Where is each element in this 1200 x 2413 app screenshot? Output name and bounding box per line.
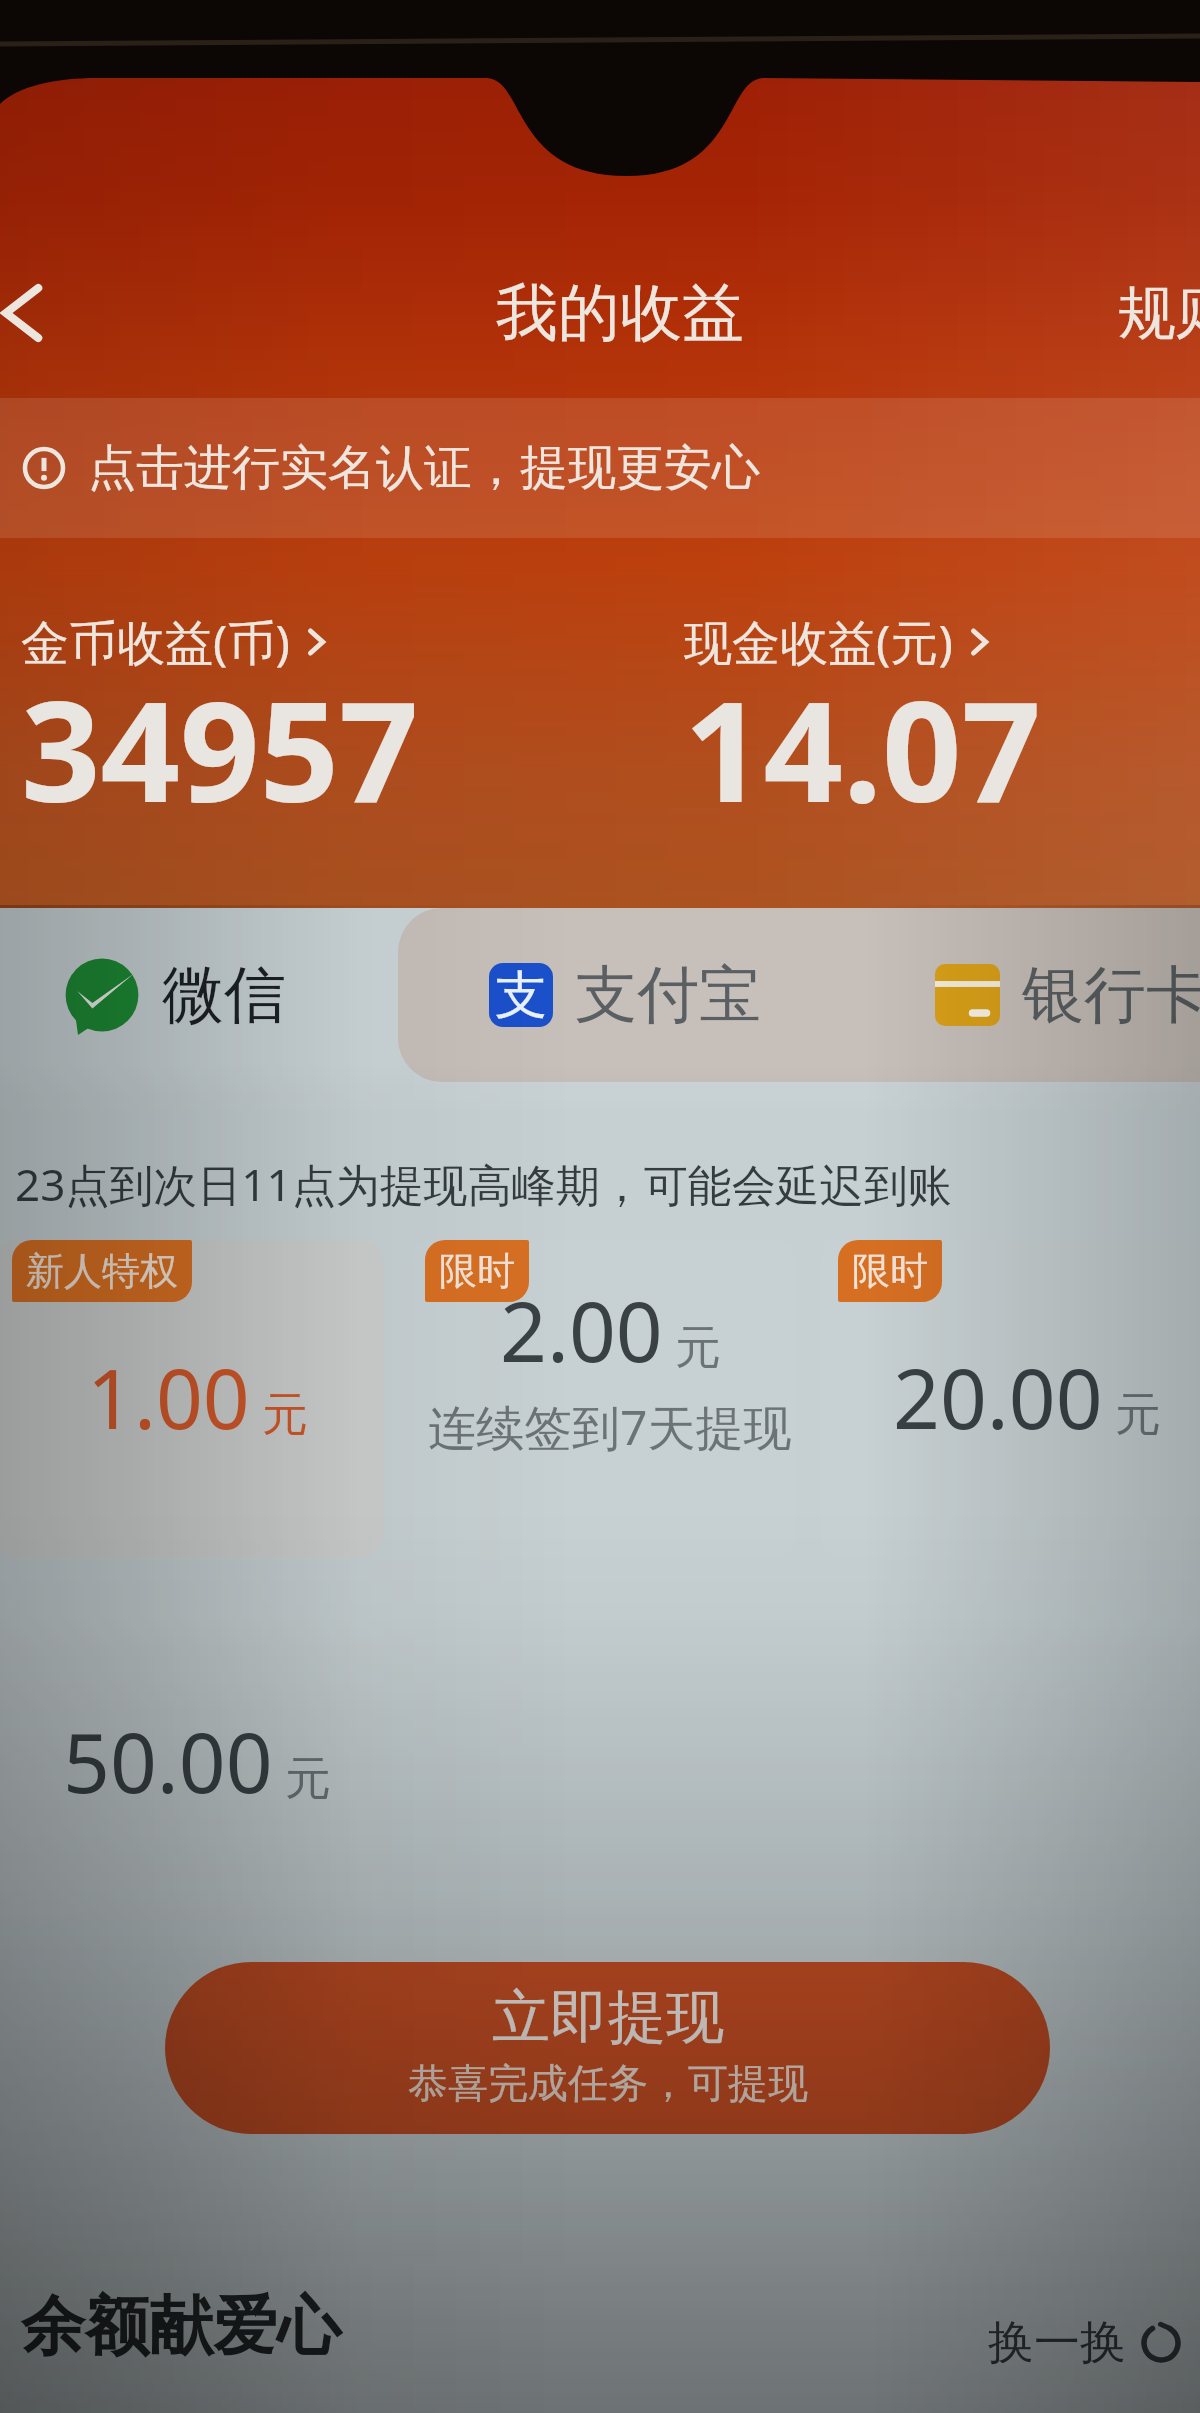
button[interactable]: Back	[0, 258, 76, 368]
button[interactable]: 点击进行实名认证，提现更安心	[0, 398, 1200, 538]
staticText: 金币收益(币)	[21, 609, 290, 675]
staticText: 现金收益(元)	[684, 609, 953, 675]
button[interactable]: 支	[489, 908, 761, 1082]
staticText: 2.00	[500, 1274, 663, 1386]
staticText: 1.00	[87, 1341, 250, 1453]
staticText: 新人特权	[26, 1247, 178, 1295]
button[interactable]: 1.00	[0, 1240, 383, 1558]
staticText: 20.00	[893, 1341, 1103, 1453]
staticText: 元	[675, 1319, 721, 1377]
button[interactable]: 20.00	[821, 1240, 1200, 1558]
staticText: 23点到次日11点为提现高峰期，可能会延迟到账	[15, 1154, 952, 1214]
staticText: 银行卡	[1022, 956, 1200, 1034]
staticText: 我的收益	[496, 274, 744, 352]
staticText: 元	[1115, 1386, 1161, 1444]
staticText: 点击进行实名认证，提现更安心	[88, 438, 760, 498]
staticText: 限时	[439, 1247, 515, 1295]
button[interactable]: 规则	[1118, 277, 1200, 350]
staticText: 支付宝	[575, 956, 761, 1034]
staticText: 恭喜完成任务，可提现	[408, 2058, 808, 2108]
staticText: 立即提现	[492, 1981, 724, 2054]
button[interactable]: 微信	[0, 908, 398, 1082]
staticText: 元	[262, 1386, 308, 1444]
button[interactable]: 立即提现	[165, 1962, 1050, 2134]
button[interactable]: 银行卡	[935, 908, 1200, 1082]
staticText: 50.00	[63, 1705, 273, 1817]
staticText: 元	[285, 1750, 331, 1808]
button[interactable]: 换一换	[988, 2314, 1182, 2372]
staticText: 连续签到7天提现	[428, 1394, 792, 1460]
staticText: 换一换	[988, 2314, 1126, 2372]
button[interactable]: 50.00	[0, 1604, 383, 1922]
staticText: 14.07	[684, 653, 1042, 842]
staticText: 余额献爱心	[21, 2286, 341, 2367]
staticText: 微信	[162, 956, 286, 1034]
staticText: 限时	[852, 1247, 928, 1295]
staticText: 34957	[21, 653, 419, 842]
staticText: 支	[495, 963, 547, 1027]
button[interactable]: 2.00	[408, 1240, 796, 1558]
